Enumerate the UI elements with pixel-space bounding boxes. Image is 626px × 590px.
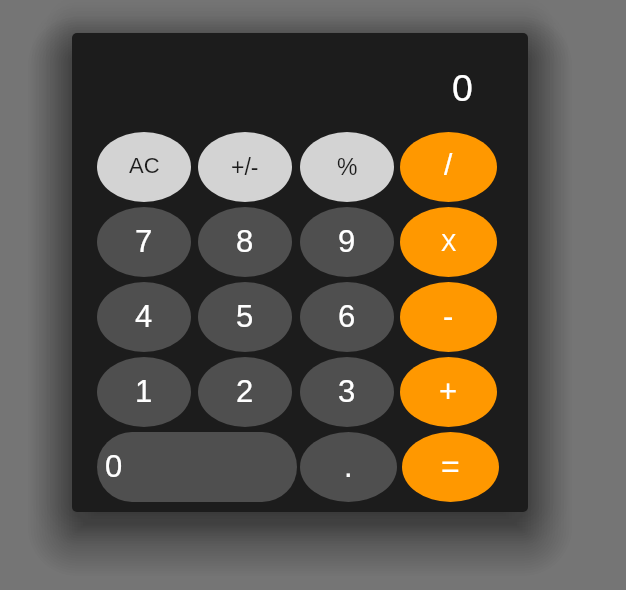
staticText: 4	[135, 299, 153, 334]
button[interactable]: 7	[97, 207, 191, 277]
staticText: /	[444, 148, 453, 182]
button[interactable]: 2	[198, 357, 292, 427]
button[interactable]: All clear	[97, 132, 191, 202]
button[interactable]: 5	[198, 282, 292, 352]
staticText: %	[337, 154, 358, 180]
staticText: 6	[338, 299, 356, 334]
button[interactable]: 6	[300, 282, 394, 352]
staticText: X	[441, 230, 457, 256]
button[interactable]: 3	[300, 357, 394, 427]
staticText: 3	[338, 374, 356, 409]
button[interactable]: 9	[300, 207, 394, 277]
button[interactable]: Decimal point	[300, 432, 397, 502]
staticText: 8	[236, 224, 254, 259]
staticText: 9	[338, 224, 356, 259]
staticText: 7	[135, 224, 153, 259]
staticText: -	[443, 299, 454, 334]
staticText: 5	[236, 299, 254, 334]
button[interactable]: 8	[198, 207, 292, 277]
button[interactable]: Equals	[402, 432, 499, 502]
button[interactable]: Add	[400, 357, 497, 427]
button[interactable]: 1	[97, 357, 191, 427]
staticText: 2	[236, 374, 254, 409]
staticText: 0	[452, 67, 473, 109]
button[interactable]: Multiply	[400, 207, 497, 277]
staticText: .	[344, 449, 353, 484]
staticText: +	[439, 374, 458, 409]
button[interactable]: Percent	[300, 132, 394, 202]
button[interactable]: 4	[97, 282, 191, 352]
button[interactable]: 0	[97, 432, 297, 502]
staticText: AC	[129, 153, 160, 178]
button[interactable]: Subtract	[400, 282, 497, 352]
staticText: 1	[135, 374, 153, 409]
button[interactable]: Divide	[400, 132, 497, 202]
staticText: 0	[105, 449, 123, 484]
staticText: +/-	[231, 154, 259, 180]
button[interactable]: Toggle sign	[198, 132, 292, 202]
staticText: =	[441, 448, 460, 484]
